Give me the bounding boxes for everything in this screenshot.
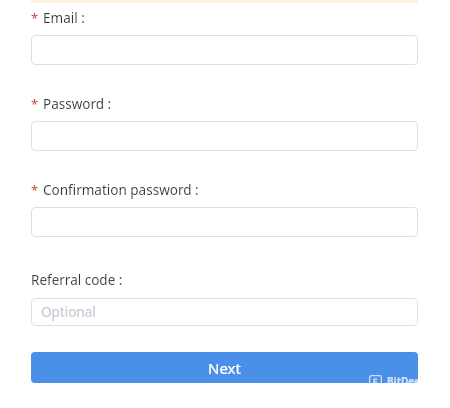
button[interactable]: Next <box>31 352 418 383</box>
staticText: Password : <box>43 95 112 113</box>
staticText: Referral code : <box>31 271 123 289</box>
staticText: Confirmation password : <box>43 181 199 199</box>
other: BitDegree watermark <box>369 374 437 388</box>
button[interactable] <box>31 121 418 151</box>
staticText: Optional <box>41 303 96 321</box>
staticText: Email : <box>43 9 85 27</box>
button[interactable] <box>31 207 418 237</box>
staticText: BitDegree <box>387 374 437 388</box>
staticText: * <box>31 9 39 27</box>
staticText: * <box>31 95 39 113</box>
staticText: Next <box>208 358 241 378</box>
staticText: * <box>31 181 39 199</box>
button[interactable] <box>31 35 418 65</box>
button[interactable]: Optional <box>31 298 418 326</box>
